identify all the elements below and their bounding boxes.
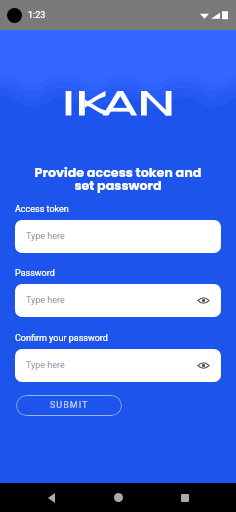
button[interactable]: Recents	[170, 483, 200, 512]
button[interactable]: Type here	[15, 284, 221, 317]
staticText: 1:23	[28, 10, 46, 21]
staticText: SUBMIT	[50, 400, 89, 411]
other: Toggle password visibility	[198, 360, 209, 371]
staticText: Provide access token and set password	[0, 164, 236, 195]
button[interactable]: Home	[103, 483, 133, 512]
button[interactable]: Type here	[15, 220, 221, 253]
staticText: Type here	[26, 295, 65, 306]
button[interactable]: SUBMIT	[16, 395, 122, 416]
staticText: Confirm your password	[15, 333, 108, 344]
staticText: Access token	[15, 204, 69, 215]
button[interactable]: Back	[37, 483, 67, 512]
staticText: Password	[15, 268, 55, 279]
staticText: Type here	[26, 231, 65, 242]
other: Toggle password visibility	[198, 295, 209, 306]
button[interactable]: Type here	[15, 349, 221, 382]
staticText: Type here	[26, 360, 65, 371]
